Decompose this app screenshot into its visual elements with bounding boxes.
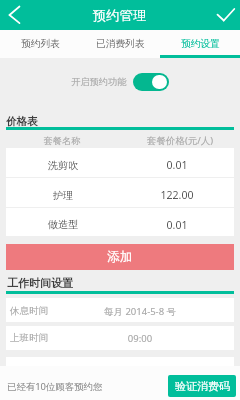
staticText: 套餐价格(元/人) [120,134,240,147]
staticText: 预约设置 [181,38,220,50]
staticText: 上班时间 [10,332,48,344]
staticText: 验证消费码 [175,379,230,393]
staticText: 预约列表 [21,38,60,50]
staticText: 护理 [6,189,120,202]
button[interactable]: 已消费列表 [80,30,160,58]
button[interactable]: 添加 [6,244,234,270]
staticText: 已消费列表 [96,38,145,50]
button[interactable] [6,298,234,322]
button[interactable]: 做造型 [6,208,234,236]
staticText: 工作时间设置 [7,276,73,290]
staticText: 预约管理 [93,7,147,24]
button[interactable] [6,326,234,350]
staticText: 已经有10位顾客预约您 [7,380,103,393]
staticText: 休息时间 [10,305,48,317]
staticText: 09:00 [80,332,200,345]
staticText: 价格表 [6,115,38,128]
button[interactable]: 护理 [6,178,234,207]
button[interactable]: 验证消费码 [168,375,236,397]
button[interactable]: 预约列表 [0,30,80,58]
staticText: 0.01 [120,158,234,172]
staticText: 开启预约功能 [71,76,127,88]
staticText: 0.01 [120,218,234,232]
staticText: 套餐名称 [2,135,122,147]
button[interactable]: Confirm [206,0,240,30]
button[interactable]: 预约设置 [160,30,240,58]
staticText: 添加 [107,249,133,265]
staticText: 122.00 [120,188,234,202]
staticText: 每月 2014-5-8 号 [80,305,200,318]
button[interactable]: 洗剪吹 [6,148,234,177]
button[interactable]: 开启预约功能 [71,73,169,91]
button[interactable]: Back [0,0,30,30]
staticText: 洗剪吹 [6,159,120,172]
staticText: 做造型 [6,218,120,231]
